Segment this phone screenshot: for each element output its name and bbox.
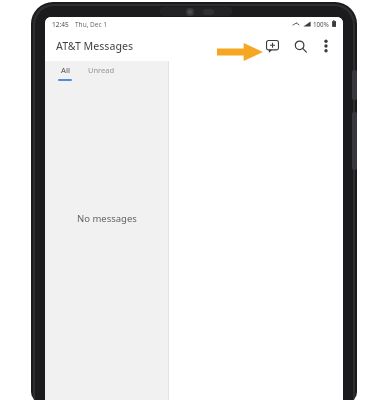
button[interactable]: Search [289, 35, 311, 57]
button[interactable]: New message [261, 35, 283, 57]
button[interactable]: All [56, 61, 74, 81]
staticText: 100% [313, 20, 329, 28]
staticText: No messages [77, 212, 137, 225]
staticText: Thu, Dec 1 [75, 20, 108, 29]
staticText: 12:45 [52, 20, 69, 29]
staticText: AT&T Messages [56, 39, 134, 53]
staticText: Unread [88, 65, 115, 75]
staticText: All [61, 65, 70, 75]
button[interactable]: Unread [86, 61, 117, 75]
button[interactable]: More options [315, 35, 337, 57]
